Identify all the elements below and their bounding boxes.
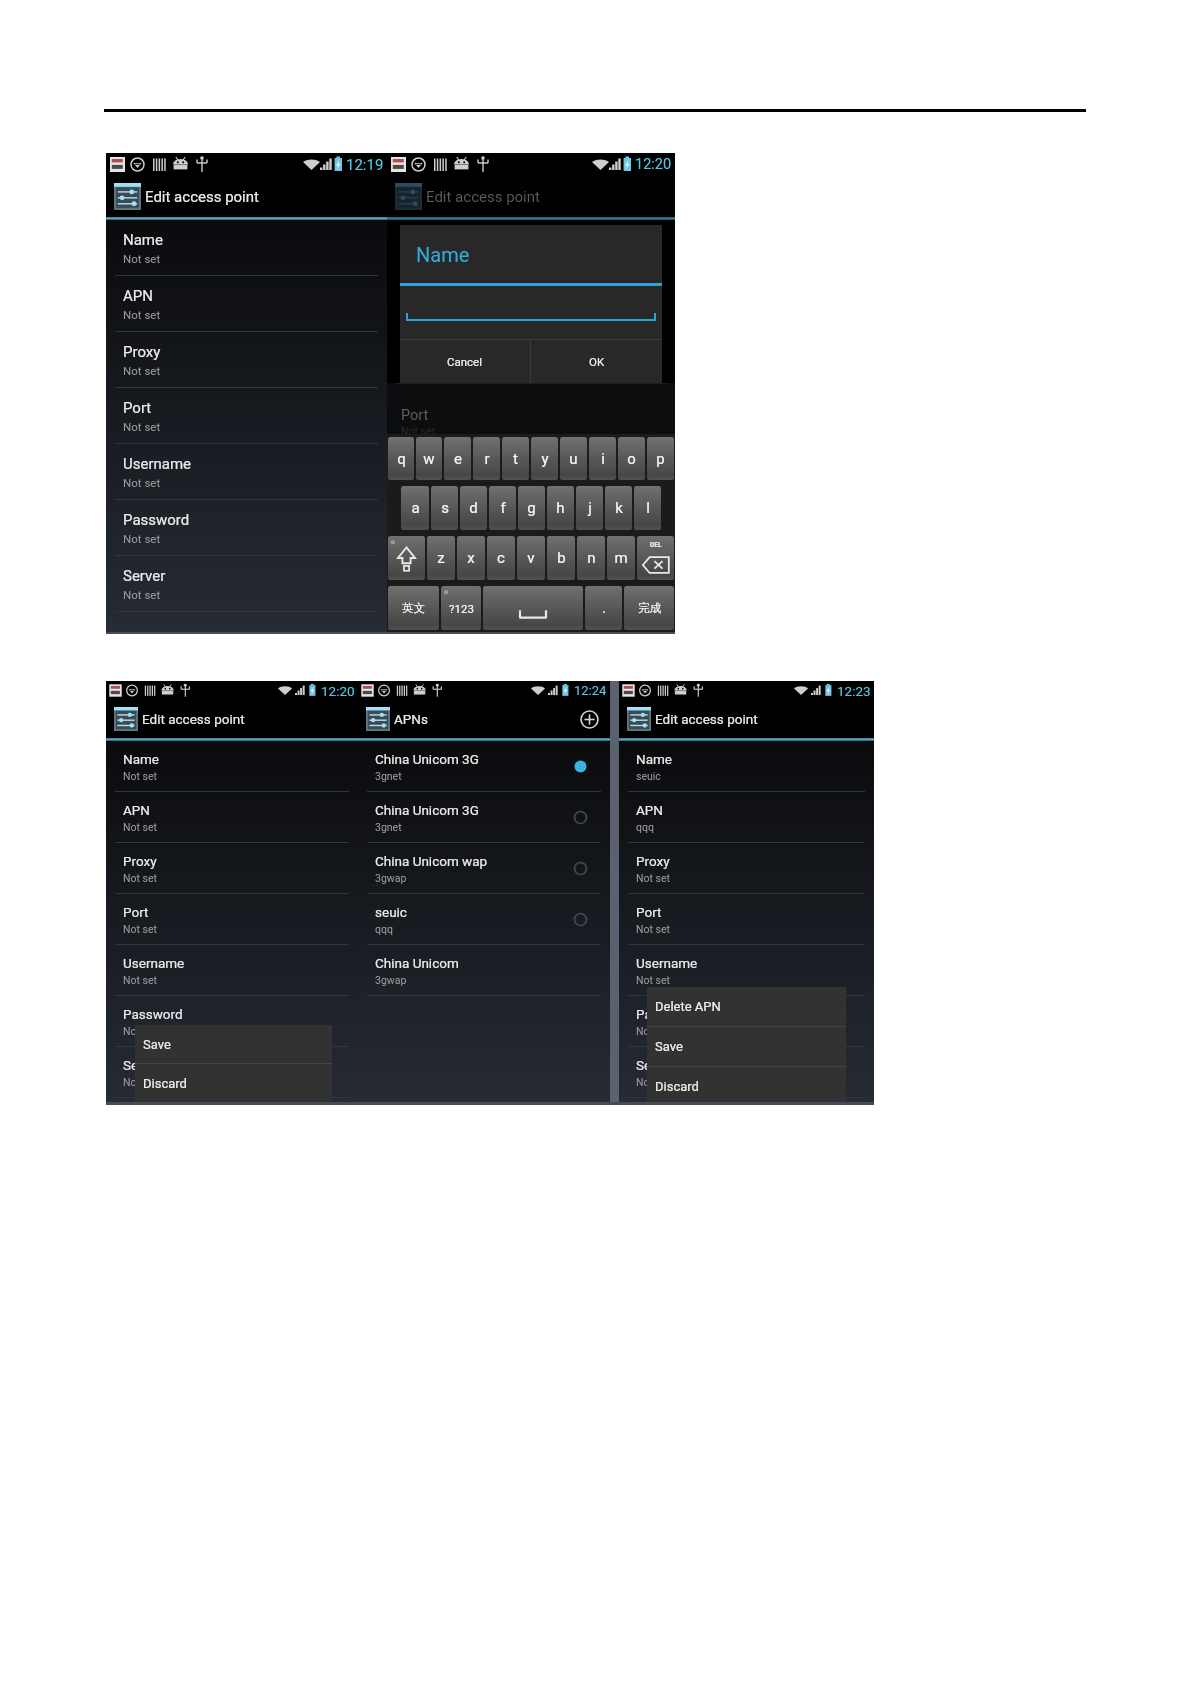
button[interactable]: t (502, 437, 529, 480)
button[interactable]: China Unicom (358, 945, 610, 996)
button[interactable]: Name (106, 220, 387, 276)
staticText: Username (636, 955, 698, 971)
staticText: c (497, 549, 505, 567)
button[interactable]: v (517, 536, 545, 580)
staticText: China Unicom 3G (375, 751, 479, 767)
button[interactable]: c (487, 536, 515, 580)
button[interactable]: e (444, 437, 471, 480)
staticText: China Unicom 3G (375, 802, 479, 818)
button[interactable]: Username (619, 945, 874, 996)
staticText: a (411, 499, 420, 517)
button[interactable]: China Unicom 3G (358, 792, 610, 843)
button[interactable]: s (431, 486, 458, 530)
staticText: Cancel (447, 355, 483, 368)
button[interactable]: p (647, 437, 674, 480)
button[interactable]: China Unicom 3G (358, 741, 610, 792)
staticText: Discard (655, 1079, 699, 1094)
staticText: Save (143, 1037, 171, 1052)
button[interactable]: Username (106, 945, 358, 996)
staticText: s (441, 499, 449, 517)
button[interactable]: Proxy (619, 843, 874, 894)
button[interactable]: Shift (388, 536, 425, 580)
button[interactable]: j (576, 486, 603, 530)
button[interactable]: Proxy (106, 332, 387, 388)
button[interactable]: Discard (647, 1067, 846, 1105)
button[interactable]: Name (619, 741, 874, 792)
button[interactable]: Port (106, 388, 387, 444)
button[interactable]: APN (619, 792, 874, 843)
button[interactable]: Save (135, 1025, 332, 1063)
button[interactable]: w (416, 437, 442, 480)
button[interactable]: n (577, 536, 605, 580)
button[interactable]: Save (647, 1027, 846, 1066)
staticText: m (614, 549, 628, 567)
button[interactable]: Password (619, 996, 874, 1047)
staticText: Name (636, 751, 672, 767)
button[interactable]: ?123 (441, 586, 481, 630)
button[interactable]: y (531, 437, 558, 480)
button[interactable]: Delete (637, 536, 674, 580)
staticText: Name (416, 243, 470, 266)
button[interactable]: k (605, 486, 632, 530)
button[interactable]: 英文 (388, 586, 439, 630)
button[interactable]: q (388, 437, 414, 480)
button[interactable]: h (547, 486, 574, 530)
button[interactable]: b (547, 536, 575, 580)
staticText: b (557, 549, 566, 567)
staticText: Port (123, 904, 149, 920)
staticText: n (587, 549, 596, 567)
button[interactable]: d (460, 486, 487, 530)
staticText: e (454, 450, 462, 468)
staticText: p (656, 450, 665, 468)
button[interactable]: l (634, 486, 661, 530)
button[interactable]: a (401, 486, 429, 530)
button[interactable]: f (489, 486, 516, 530)
button[interactable]: Password (106, 996, 358, 1047)
staticText: 3gnet (375, 770, 402, 782)
staticText: Not set (636, 923, 670, 935)
button[interactable]: u (560, 437, 587, 480)
staticText: Port (636, 904, 662, 920)
button[interactable]: Server (619, 1047, 874, 1098)
button[interactable]: Cancel (400, 340, 530, 383)
button[interactable]: New APN (579, 709, 600, 730)
button[interactable]: Username (106, 444, 387, 500)
button[interactable]: Server (106, 556, 387, 612)
button[interactable]: seuic (358, 894, 610, 945)
staticText: Not set (123, 308, 161, 321)
button[interactable]: Port (619, 894, 874, 945)
button[interactable]: Server (106, 1047, 358, 1098)
staticText: k (615, 499, 623, 517)
button[interactable]: 完成 (624, 586, 674, 630)
staticText: j (588, 499, 592, 517)
button[interactable]: APN (106, 276, 387, 332)
button[interactable]: z (427, 536, 455, 580)
button[interactable]: OK (531, 340, 662, 383)
button[interactable]: China Unicom wap (358, 843, 610, 894)
button[interactable]: Delete APN (647, 987, 846, 1026)
staticText: Port (123, 399, 152, 417)
button[interactable]: Proxy (106, 843, 358, 894)
button[interactable]: Port (106, 894, 358, 945)
staticText: Not set (123, 974, 157, 986)
staticText: China Unicom wap (375, 853, 488, 869)
button[interactable]: m (607, 536, 635, 580)
button[interactable]: x (457, 536, 485, 580)
button[interactable]: Name (106, 741, 358, 792)
button[interactable]: r (473, 437, 500, 480)
staticText: Not set (123, 923, 157, 935)
staticText: China Unicom (375, 955, 459, 971)
staticText: Name (123, 751, 159, 767)
button[interactable]: Space (483, 586, 583, 630)
staticText: 英文 (402, 601, 425, 615)
button[interactable]: Discard (135, 1064, 332, 1102)
button[interactable]: o (618, 437, 645, 480)
button[interactable]: . (585, 586, 622, 630)
button[interactable]: APN (106, 792, 358, 843)
button[interactable]: i (589, 437, 616, 480)
button[interactable]: Password (106, 500, 387, 556)
staticText: Not set (401, 425, 435, 434)
staticText: Not set (636, 1076, 670, 1088)
button[interactable]: g (518, 486, 545, 530)
staticText: Not set (123, 252, 161, 265)
